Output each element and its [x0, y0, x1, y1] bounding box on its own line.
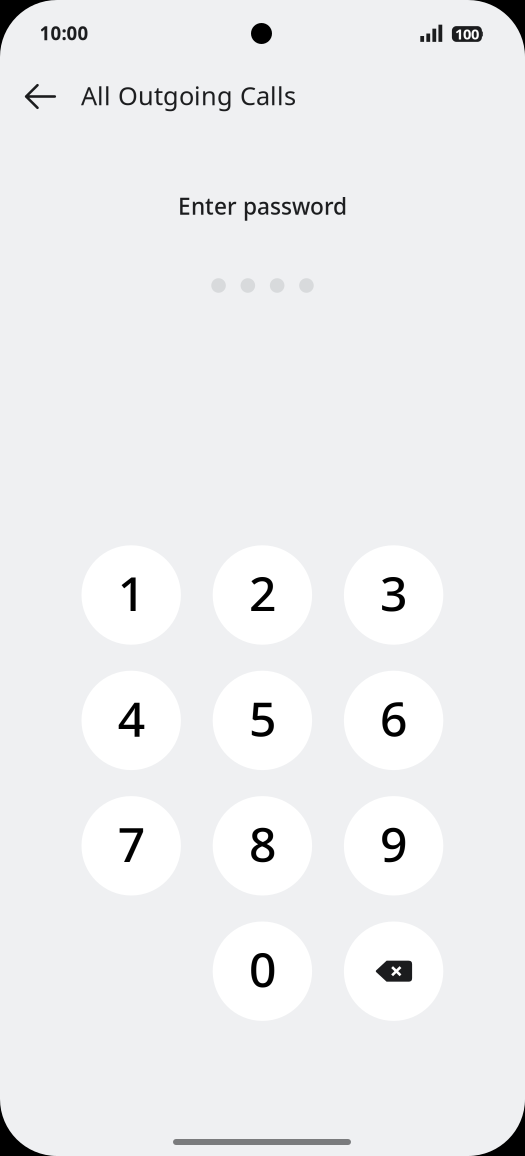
staticText: 1 [118, 561, 145, 625]
button[interactable]: 9 [344, 796, 443, 895]
staticText: 6 [380, 686, 407, 750]
staticText: 100 [455, 24, 479, 44]
staticText: 8 [249, 812, 276, 875]
staticText: 0 [249, 937, 276, 1001]
staticText: 5 [249, 686, 276, 750]
button[interactable]: 3 [344, 545, 443, 645]
staticText: Enter password [178, 191, 347, 221]
button[interactable]: 5 [213, 671, 312, 770]
button[interactable]: 6 [344, 671, 443, 770]
button[interactable]: 4 [81, 671, 181, 770]
staticText: 10:00 [39, 21, 88, 45]
staticText: 4 [118, 686, 145, 750]
staticText: 7 [118, 812, 145, 875]
button[interactable]: 8 [213, 796, 312, 895]
button[interactable]: 1 [81, 545, 181, 645]
button[interactable]: 2 [213, 545, 312, 645]
button[interactable]: Back [12, 68, 68, 124]
button[interactable]: 0 [213, 921, 312, 1021]
staticText: 2 [249, 561, 276, 625]
button[interactable]: Delete [344, 921, 443, 1021]
staticText: All Outgoing Calls [81, 79, 296, 112]
staticText: 3 [380, 561, 407, 625]
button[interactable]: 7 [81, 796, 181, 895]
staticText: 9 [380, 812, 407, 875]
